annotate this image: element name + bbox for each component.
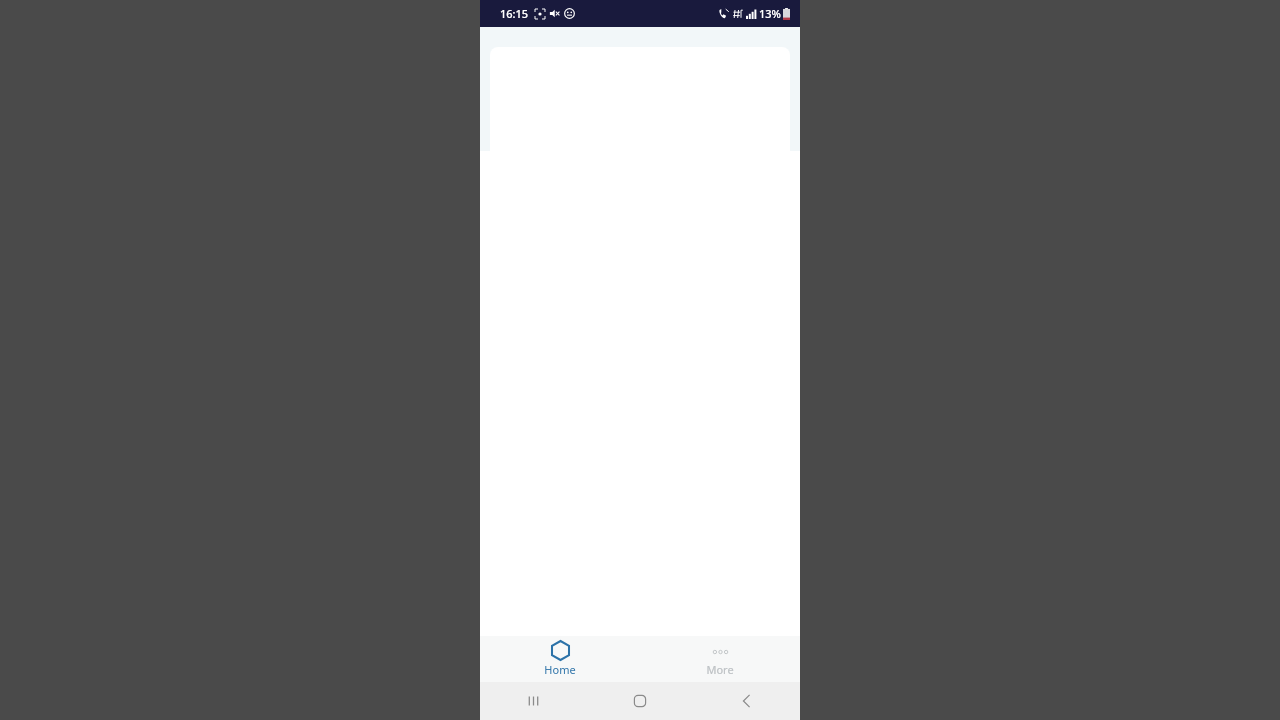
staticText: 16:15 <box>500 6 529 21</box>
button[interactable]: More <box>640 636 800 682</box>
button[interactable]: Home <box>586 682 693 720</box>
staticText: 13% <box>759 6 781 21</box>
button[interactable]: Back <box>693 682 800 720</box>
button[interactable]: Home <box>480 636 640 682</box>
button[interactable]: Recent apps <box>480 682 586 720</box>
staticText: Home <box>544 662 576 677</box>
staticText: More <box>706 662 734 677</box>
